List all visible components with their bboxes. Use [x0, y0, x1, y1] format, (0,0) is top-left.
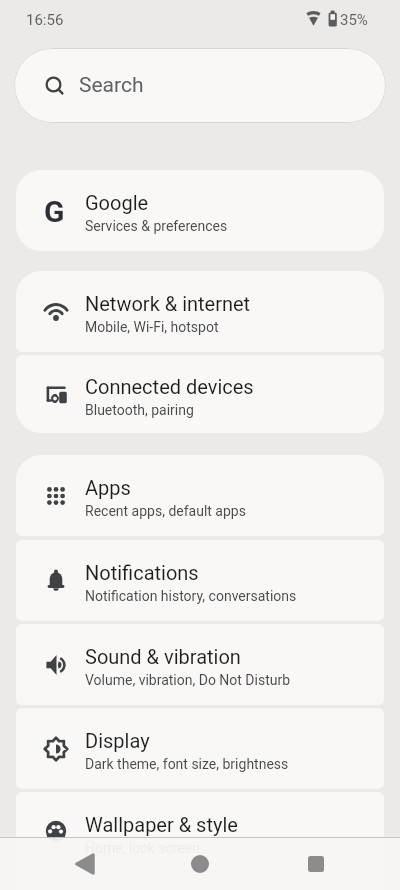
staticText: Dark theme, font size, brightness: [85, 756, 289, 772]
button[interactable]: Apps: [16, 455, 384, 536]
button[interactable]: Sound & vibration: [16, 624, 384, 705]
button[interactable]: Wallpaper & style: [16, 792, 384, 890]
staticText: Home, lock screen: [85, 840, 200, 856]
button[interactable]: Network & internet: [16, 271, 384, 352]
button[interactable]: Search: [14, 48, 386, 123]
staticText: Volume, vibration, Do Not Disturb: [85, 672, 291, 688]
staticText: Display: [85, 729, 150, 752]
staticText: Google: [85, 191, 149, 214]
button[interactable]: Notifications: [16, 540, 384, 621]
staticText: Recent apps, default apps: [85, 503, 246, 519]
staticText: Notification history, conversations: [85, 588, 297, 604]
button[interactable]: [180, 844, 220, 884]
button[interactable]: [66, 844, 106, 884]
staticText: Services & preferences: [85, 218, 228, 234]
button[interactable]: Display: [16, 708, 384, 789]
staticText: Search: [79, 73, 144, 98]
staticText: Mobile, Wi-Fi, hotspot: [85, 319, 219, 335]
staticText: Wallpaper & style: [85, 813, 238, 836]
staticText: Connected devices: [85, 375, 254, 398]
staticText: 35%: [340, 11, 368, 29]
staticText: G: [44, 194, 65, 229]
button[interactable]: [296, 844, 336, 884]
button[interactable]: Connected devices: [16, 355, 384, 433]
staticText: Notifications: [85, 561, 199, 584]
button[interactable]: Google: [16, 170, 384, 251]
staticText: 16:56: [26, 11, 64, 29]
staticText: Apps: [85, 476, 131, 499]
staticText: Sound & vibration: [85, 645, 241, 668]
staticText: Bluetooth, pairing: [85, 402, 194, 418]
staticText: Network & internet: [85, 292, 251, 315]
